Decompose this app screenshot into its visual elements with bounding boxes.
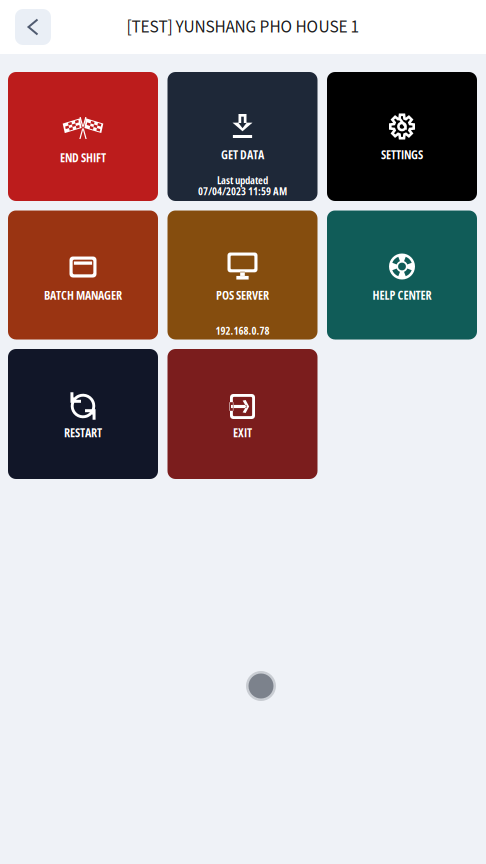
- staticText: POS SERVER: [216, 287, 269, 303]
- button[interactable]: BATCH MANAGER: [8, 210, 158, 339]
- staticText: GET DATA: [221, 146, 264, 163]
- button[interactable]: END SHIFT: [8, 72, 158, 201]
- staticText: BATCH MANAGER: [44, 287, 122, 303]
- button[interactable]: Back: [15, 9, 51, 45]
- button[interactable]: SETTINGS: [327, 72, 477, 201]
- button[interactable]: POS SERVER: [167, 210, 317, 339]
- staticText: 07/04/2023 11:59 AM: [198, 184, 287, 198]
- staticText: Last updated: [217, 173, 268, 187]
- staticText: EXIT: [233, 424, 252, 441]
- button[interactable]: EXIT: [167, 349, 317, 479]
- staticText: END SHIFT: [60, 149, 106, 166]
- staticText: SETTINGS: [381, 146, 423, 163]
- staticText: HELP CENTER: [372, 287, 431, 303]
- staticText: RESTART: [64, 424, 102, 441]
- button[interactable]: HELP CENTER: [327, 210, 477, 339]
- button[interactable]: RESTART: [8, 349, 158, 479]
- staticText: [TEST] YUNSHANG PHO HOUSE 1: [126, 15, 359, 39]
- staticText: 192.168.0.78: [215, 323, 269, 338]
- button[interactable]: GET DATA: [167, 72, 317, 201]
